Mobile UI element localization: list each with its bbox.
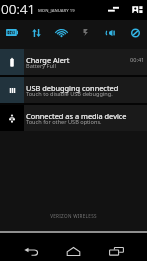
staticText: Connected as a media device [26, 111, 127, 121]
staticText: MON, JANUARY 19 [38, 8, 75, 14]
button[interactable]: Volume [100, 20, 121, 48]
button[interactable]: Connected as a media device [0, 105, 147, 131]
button[interactable]: USB debugging connected [0, 77, 147, 103]
button[interactable]: Mobile data [26, 20, 47, 48]
staticText: Charge Alert [26, 55, 70, 65]
staticText: USB debugging connected [26, 83, 119, 93]
staticText: Battery Full [26, 62, 56, 70]
button[interactable]: Battery 100 percent [0, 20, 24, 48]
button[interactable]: Home [64, 233, 82, 261]
button[interactable]: Wi-Fi [50, 20, 73, 48]
staticText: VERIZON WIRELESS [0, 213, 147, 219]
button[interactable]: Settings [132, 4, 143, 15]
button[interactable]: Charge Alert [0, 49, 147, 75]
button[interactable]: Do not disturb [125, 20, 146, 48]
button[interactable]: Flashlight [77, 20, 94, 48]
staticText: Touch for other USB options. [26, 118, 102, 126]
staticText: 00:41 [1, 0, 36, 18]
button[interactable]: Back [22, 233, 40, 261]
staticText: Touch to disable USB debugging. [26, 90, 113, 98]
staticText: 00:41 [130, 56, 145, 64]
button[interactable]: Recents [107, 233, 125, 261]
